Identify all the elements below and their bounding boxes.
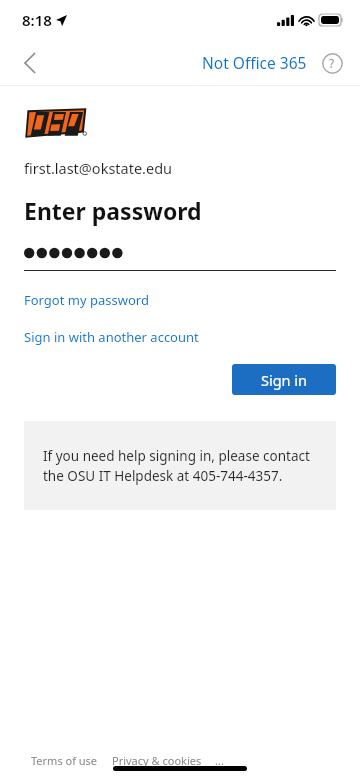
staticText: 8:18 — [22, 10, 52, 30]
button[interactable]: Terms of use — [31, 753, 98, 768]
staticText: first.last@okstate.edu — [24, 158, 173, 178]
button[interactable]: Privacy & cookies — [112, 753, 202, 768]
button[interactable]: Help — [316, 47, 348, 79]
staticText: Enter password — [24, 195, 202, 226]
button[interactable]: Sign in — [232, 364, 336, 395]
staticText: Privacy & cookies — [112, 753, 202, 768]
staticText: ? — [329, 55, 335, 71]
staticText: If you need help signing in, please cont… — [43, 447, 317, 485]
button[interactable]: Forgot my password — [24, 288, 149, 312]
button[interactable] — [24, 240, 336, 271]
staticText: Forgot my password — [24, 291, 149, 309]
staticText: Terms of use — [31, 753, 98, 768]
staticText: ... — [215, 753, 224, 768]
staticText: Sign in with another account — [24, 328, 199, 346]
button[interactable]: More — [210, 751, 228, 769]
button[interactable]: Back — [8, 41, 52, 85]
button[interactable]: Sign in with another account — [24, 325, 199, 349]
staticText: Not Office 365 — [202, 52, 307, 73]
staticText: Sign in — [261, 370, 308, 390]
button[interactable]: Not Office 365 — [200, 46, 309, 79]
